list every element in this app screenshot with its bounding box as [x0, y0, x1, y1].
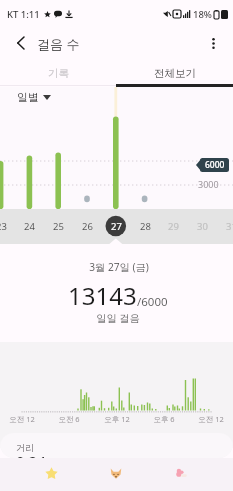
staticText: 기록 — [48, 67, 69, 80]
staticText: 오전 6 — [58, 414, 80, 424]
button[interactable]: 전체보기 — [116, 60, 233, 86]
staticText: 27 — [111, 220, 122, 233]
staticText: 26 — [82, 220, 93, 233]
staticText: 0.24 — [16, 451, 46, 458]
staticText: 오전 12 — [198, 414, 224, 424]
staticText: 오후 12 — [104, 414, 130, 424]
button[interactable]: Fox sticker — [102, 459, 130, 487]
button[interactable]: 28 — [133, 209, 157, 244]
staticText: 25 — [53, 220, 64, 233]
button[interactable]: Back — [0, 28, 41, 58]
staticText: 6000 — [205, 159, 225, 171]
staticText: 오후 6 — [153, 414, 175, 424]
button[interactable]: 일별 — [17, 89, 51, 105]
staticText: 18% — [193, 8, 212, 21]
button[interactable]: 27 — [104, 209, 128, 244]
staticText: 일일 걸음 — [96, 311, 140, 325]
button[interactable]: 23 — [0, 209, 13, 244]
button[interactable]: More options — [198, 28, 228, 58]
button[interactable]: 24 — [17, 209, 41, 244]
staticText: 13143 — [68, 279, 137, 312]
staticText: 28 — [140, 220, 151, 233]
button[interactable]: Flower sticker — [167, 459, 195, 487]
staticText: 일별 — [17, 90, 39, 104]
staticText: 전체보기 — [154, 67, 196, 80]
staticText: 29 — [168, 220, 179, 233]
button[interactable]: Star sticker — [37, 459, 65, 487]
staticText: KT 1:11 — [7, 8, 40, 21]
button[interactable]: 26 — [75, 209, 99, 244]
staticText: 31 — [226, 220, 233, 233]
button[interactable]: 거리 — [0, 433, 233, 458]
button[interactable]: 기록 — [0, 60, 116, 86]
staticText: 30 — [197, 220, 208, 233]
staticText: /6000 — [137, 294, 168, 310]
staticText: 3000 — [198, 178, 219, 190]
button[interactable]: 31 — [219, 209, 233, 244]
staticText: 23 — [0, 220, 7, 233]
staticText: 3월 27일 (금) — [89, 260, 149, 274]
staticText: 거리 — [16, 442, 34, 453]
button[interactable]: 30 — [190, 209, 214, 244]
button[interactable]: 29 — [161, 209, 185, 244]
button[interactable]: 25 — [46, 209, 70, 244]
staticText: 24 — [24, 220, 35, 233]
staticText: 오전 12 — [9, 414, 35, 424]
staticText: 걸음 수 — [37, 35, 80, 53]
